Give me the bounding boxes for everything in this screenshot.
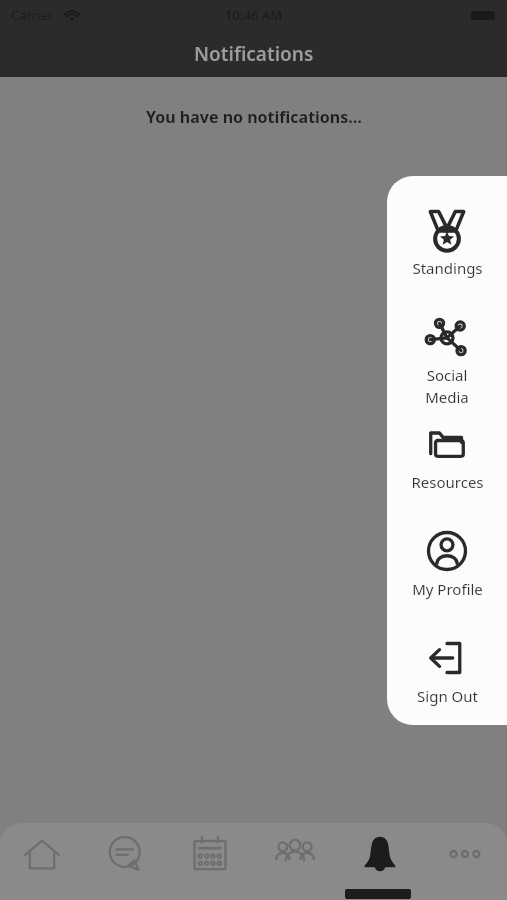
staticText: Standings bbox=[412, 258, 483, 278]
button[interactable]: Teams bbox=[252, 823, 337, 885]
staticText: Notifications bbox=[194, 41, 314, 67]
button[interactable]: Standings bbox=[387, 190, 507, 297]
button[interactable]: My Profile bbox=[387, 511, 507, 618]
staticText: Carrier bbox=[11, 6, 54, 24]
staticText: 10:46 AM bbox=[225, 6, 283, 24]
button[interactable]: Social Media bbox=[387, 297, 507, 404]
staticText: My Profile bbox=[412, 579, 483, 599]
staticText: Sign Out bbox=[417, 686, 478, 706]
staticText: Resources bbox=[411, 472, 484, 492]
button[interactable]: Calendar bbox=[168, 823, 252, 885]
staticText: You have no notifications… bbox=[146, 106, 362, 128]
staticText: Social Media bbox=[425, 365, 469, 404]
button[interactable]: Sign Out bbox=[387, 618, 507, 725]
button[interactable]: More bbox=[422, 823, 507, 885]
button[interactable]: Messages bbox=[84, 823, 168, 885]
button[interactable]: Notifications bbox=[337, 823, 422, 885]
button[interactable]: Resources bbox=[387, 404, 507, 511]
button[interactable]: Home bbox=[0, 823, 84, 885]
